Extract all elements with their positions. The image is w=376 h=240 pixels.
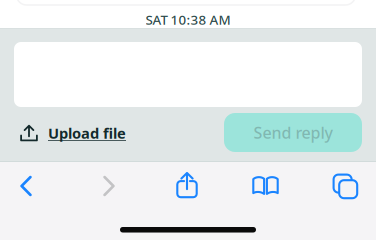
button[interactable]: Tabs	[309, 165, 376, 209]
button[interactable]: Send reply	[224, 113, 362, 152]
button[interactable]: Forward	[72, 164, 146, 208]
button[interactable]: Bookmarks	[228, 164, 302, 208]
staticText: Send reply	[253, 122, 332, 143]
staticText: SAT 10:38 AM	[145, 11, 230, 28]
staticText: Upload file	[48, 123, 126, 143]
button[interactable]: Back	[0, 164, 63, 208]
button[interactable]: Share	[150, 163, 224, 207]
button[interactable]: Upload file	[20, 118, 200, 148]
